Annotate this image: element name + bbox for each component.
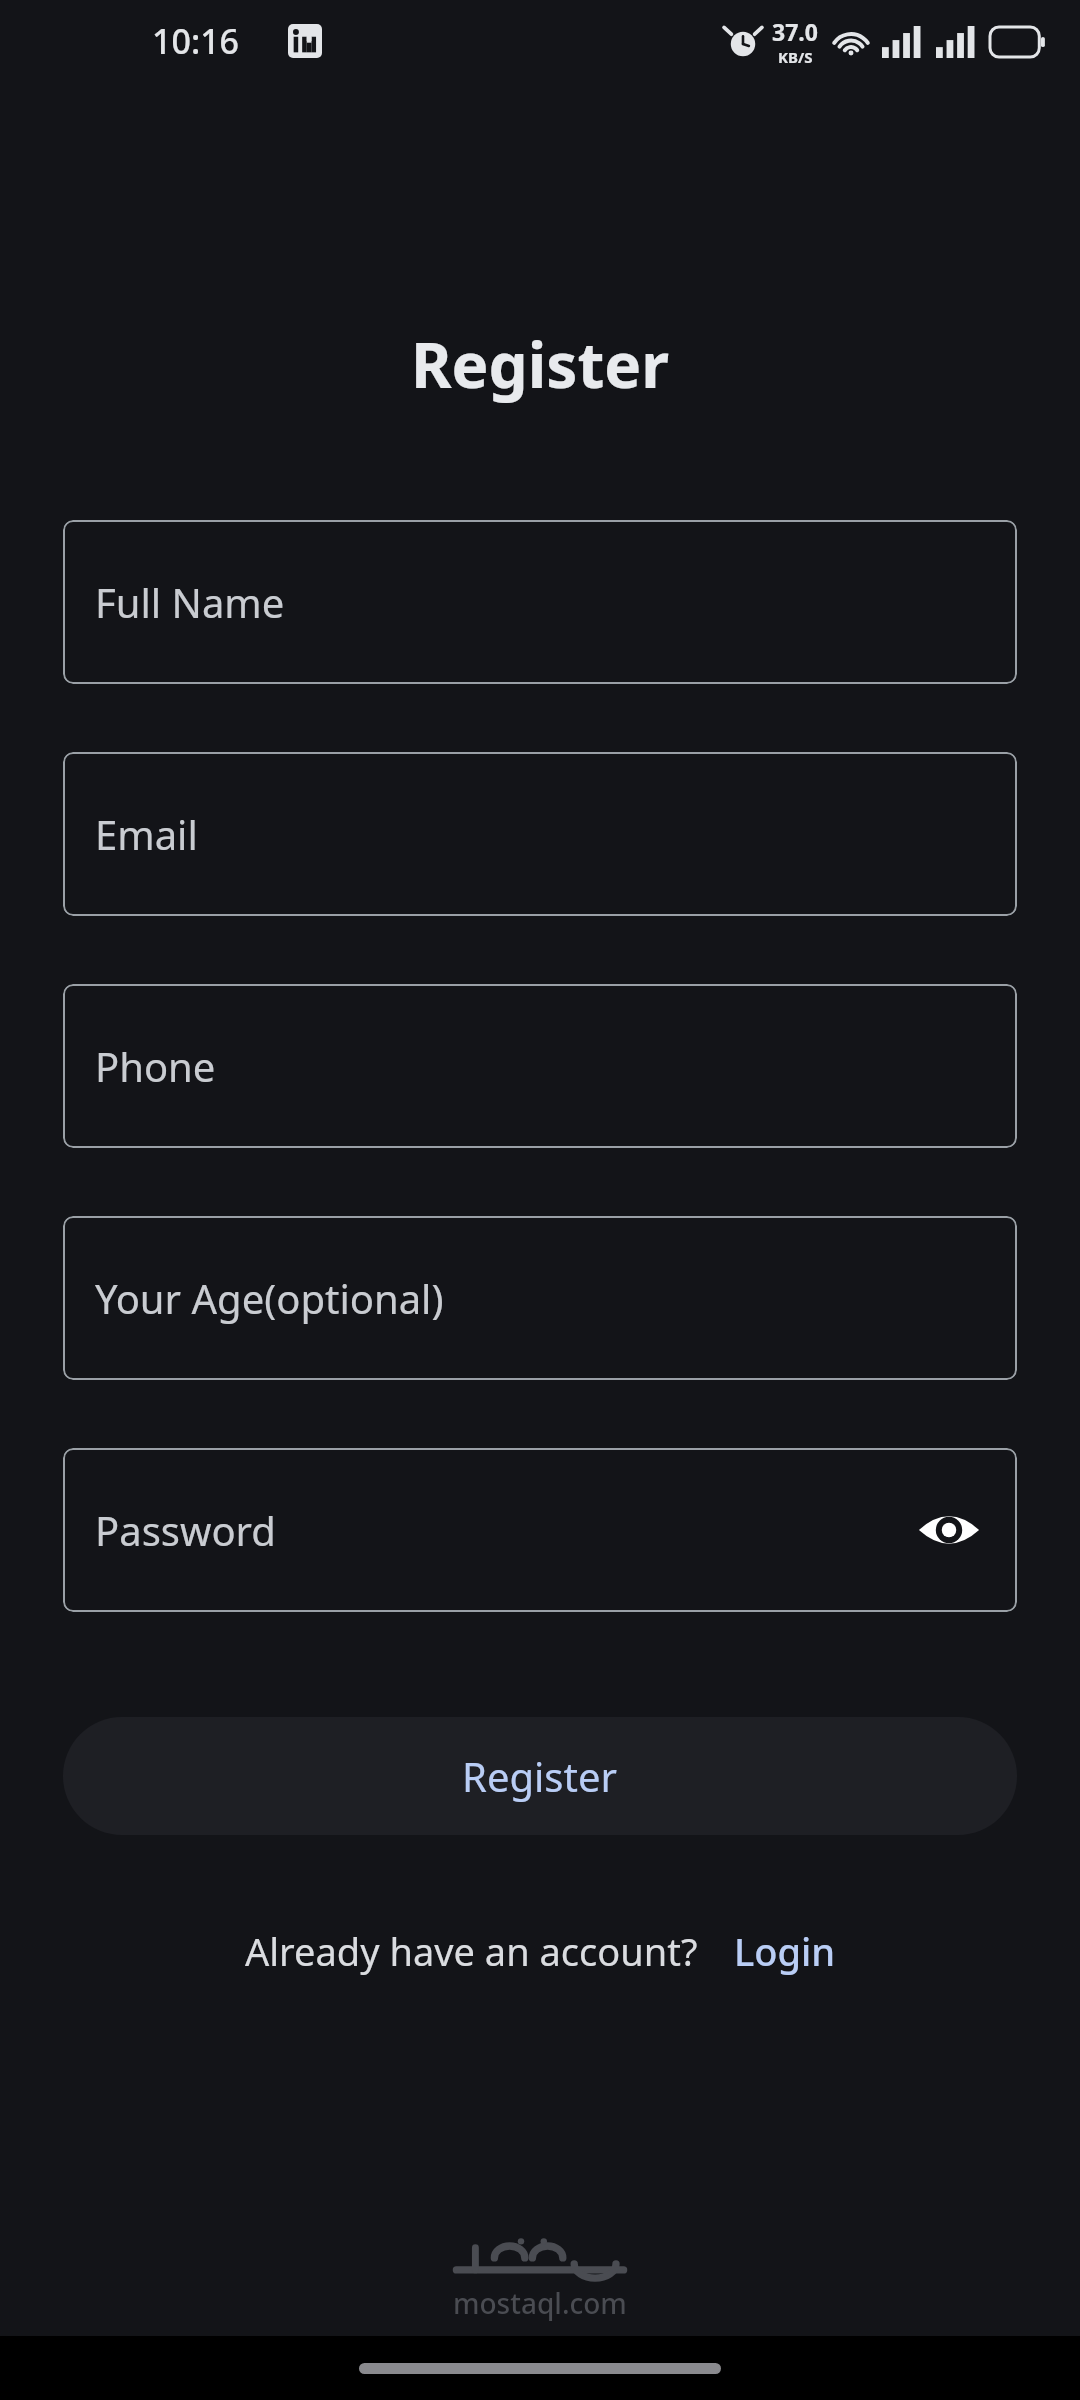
staticText: KB/S (778, 47, 813, 67)
button[interactable]: Login (734, 1925, 836, 1977)
staticText: Login (734, 1925, 836, 1977)
button[interactable]: Email (63, 752, 1017, 916)
button[interactable]: Register (63, 1717, 1017, 1835)
staticText: 37.0 (772, 16, 818, 47)
staticText: Email (95, 807, 198, 861)
staticText: Register (462, 1749, 618, 1803)
button[interactable]: Password (63, 1448, 1017, 1612)
button[interactable]: Your Age(optional) (63, 1216, 1017, 1380)
staticText: Full Name (95, 575, 285, 629)
staticText: Phone (95, 1039, 216, 1093)
staticText: 10:16 (152, 18, 240, 64)
button[interactable]: Full Name (63, 520, 1017, 684)
staticText: Password (95, 1503, 276, 1557)
staticText: mostaql.com (453, 2284, 627, 2322)
staticText: Register (0, 322, 1080, 406)
staticText: Your Age(optional) (95, 1271, 444, 1325)
button[interactable]: Phone (63, 984, 1017, 1148)
staticText: Already have an account? (245, 1925, 698, 1977)
button[interactable]: Show password (911, 1492, 987, 1568)
